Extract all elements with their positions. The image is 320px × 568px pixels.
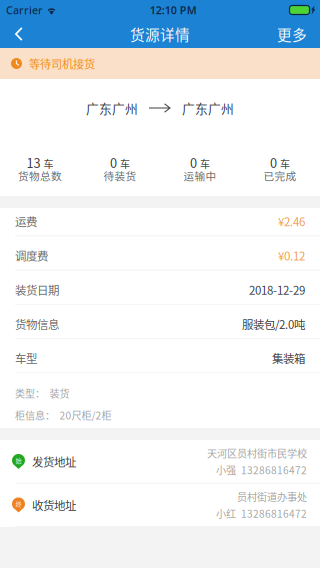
staticText: 广东广州	[86, 99, 138, 117]
staticText: 运输中	[183, 168, 216, 183]
staticText: 柜信息：	[15, 408, 55, 422]
staticText: 12:10 PM	[150, 3, 197, 17]
staticText: 装货	[49, 386, 69, 400]
staticText: 始	[15, 456, 21, 465]
staticText: 13	[26, 153, 40, 172]
button[interactable]: 终	[0, 483, 320, 527]
staticText: 2018-12-29	[249, 281, 305, 298]
staticText: 等待司机接货	[29, 55, 95, 72]
staticText: 小红	[216, 506, 236, 521]
staticText: 更多	[277, 23, 307, 45]
staticText: 车型	[15, 350, 37, 366]
staticText: 0	[110, 153, 117, 172]
staticText: 车	[280, 156, 290, 171]
staticText: 收货地址	[32, 497, 76, 513]
staticText: 车	[200, 156, 210, 171]
staticText: Carrier	[6, 3, 43, 17]
staticText: 已完成	[263, 168, 296, 183]
staticText: 车	[120, 156, 130, 171]
staticText: 集装箱	[272, 350, 305, 366]
staticText: 服装包/2.0吨	[242, 316, 305, 332]
staticText: 发货地址	[32, 453, 76, 470]
staticText: 类型：	[15, 386, 45, 400]
staticText: 13286816472	[241, 506, 307, 521]
button[interactable]: 始	[0, 440, 320, 483]
button[interactable]: 更多	[267, 20, 320, 48]
staticText: 待装货	[103, 168, 136, 183]
staticText: 车	[43, 156, 53, 171]
button[interactable]: 返回	[0, 20, 53, 48]
staticText: 货源详情	[130, 23, 190, 45]
staticText: ¥0.12	[278, 247, 305, 264]
staticText: 13286816472	[241, 462, 307, 477]
staticText: 0	[270, 153, 277, 172]
staticText: 员村街道办事处	[237, 489, 307, 504]
staticText: 天河区员村街市民学校	[207, 446, 307, 460]
staticText: 货物总数	[18, 168, 62, 183]
staticText: 小强	[216, 462, 236, 477]
staticText: 调度费	[15, 247, 48, 264]
staticText: 0	[190, 153, 197, 172]
staticText: ¥2.46	[278, 213, 305, 230]
staticText: 终	[15, 499, 21, 508]
staticText: 20尺柜/2柜	[59, 408, 111, 422]
staticText: 运费	[15, 213, 37, 230]
staticText: 广东广州	[182, 99, 234, 117]
staticText: 货物信息	[15, 316, 59, 332]
staticText: 装货日期	[15, 281, 59, 298]
